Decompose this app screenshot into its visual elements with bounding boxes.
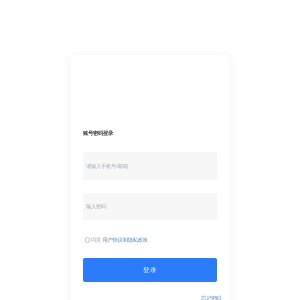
staticText: 同意 (91, 237, 101, 243)
button[interactable]: 请输入手机号/邮箱 (83, 152, 217, 180)
staticText: 忘记密码 (201, 295, 221, 300)
button[interactable]: 同意 (85, 236, 147, 244)
button[interactable]: 请输入密码 (83, 193, 217, 220)
staticText: 账号密码登录 (83, 130, 113, 137)
button[interactable]: 登录 (83, 258, 217, 282)
staticText: 用户协议和隐私政策 (102, 237, 147, 243)
button[interactable]: 忘记密码 (201, 295, 221, 300)
staticText: 输入密码 (86, 203, 106, 210)
staticText: 登录 (143, 266, 157, 274)
staticText: 请输入手机号/邮箱 (86, 162, 128, 170)
